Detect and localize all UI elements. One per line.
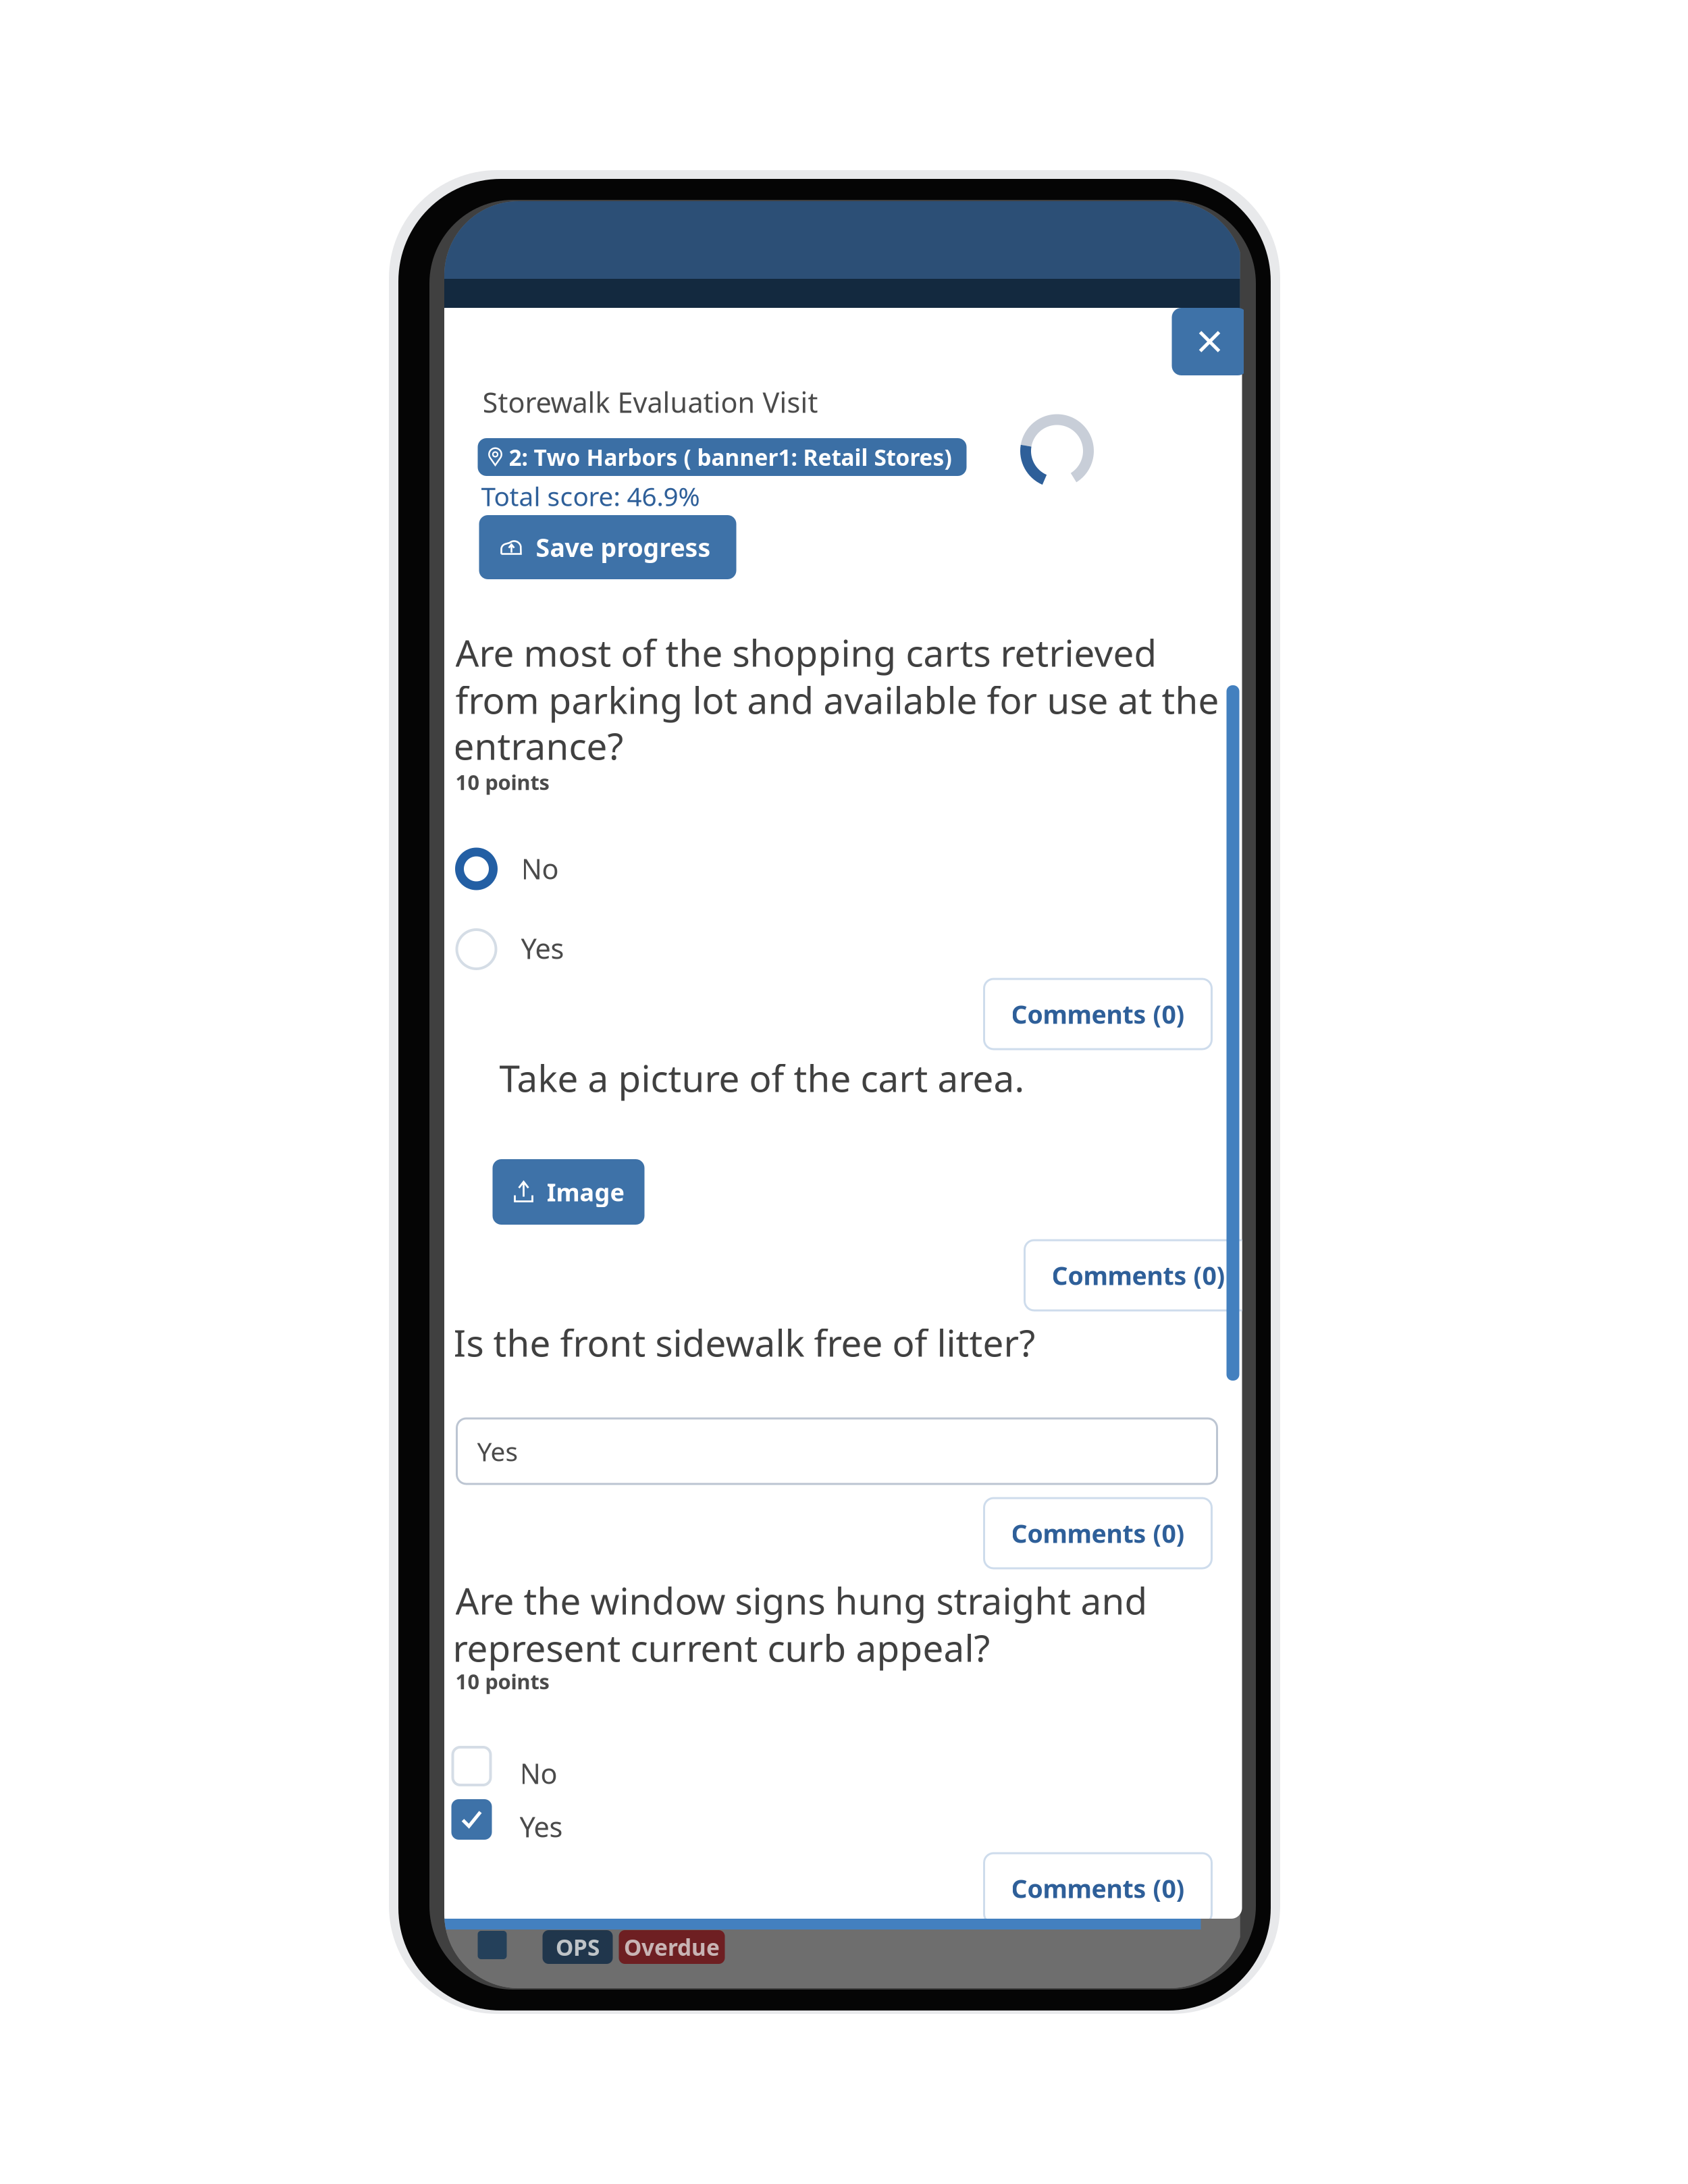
button[interactable]: Comments (0) — [984, 979, 1212, 1049]
button[interactable]: Comments (0) — [984, 1498, 1212, 1568]
staticText: 10 points — [455, 768, 549, 796]
staticText: Yes — [521, 930, 564, 967]
staticText: Save progress — [536, 530, 711, 564]
button[interactable]: Comments (0) — [984, 1853, 1212, 1923]
staticText: 10 points — [455, 1668, 549, 1695]
staticText: 2: Two Harbors ( banner1: Retail Stores) — [509, 442, 952, 472]
staticText: Comments (0) — [1052, 1259, 1225, 1292]
staticText: Is the front sidewalk free of litter? — [453, 1318, 1035, 1367]
staticText: represent current curb appeal? — [453, 1623, 990, 1672]
button[interactable]: No — [451, 1745, 653, 1790]
staticText: Comments (0) — [1011, 1516, 1185, 1550]
staticText: Are most of the shopping carts retrieved — [455, 628, 1157, 677]
staticText: Comments (0) — [1011, 997, 1185, 1031]
staticText: entrance? — [453, 721, 624, 770]
staticText: Storewalk Evaluation Visit — [482, 383, 818, 421]
staticText: Image — [547, 1176, 624, 1208]
staticText: Are the window signs hung straight and — [455, 1576, 1148, 1625]
button[interactable]: Image — [493, 1159, 644, 1225]
button[interactable]: Comments (0) — [1025, 1240, 1252, 1310]
staticText: Yes — [520, 1808, 563, 1845]
staticText: Comments (0) — [1011, 1872, 1185, 1905]
button[interactable]: Yes — [451, 1799, 653, 1843]
button[interactable]: Close — [1172, 308, 1247, 375]
staticText: OPS — [556, 1932, 600, 1962]
staticText: Yes — [477, 1434, 518, 1468]
staticText: from parking lot and available for use a… — [455, 675, 1219, 724]
button[interactable]: Save progress — [479, 515, 736, 579]
button[interactable]: No — [451, 843, 654, 886]
button[interactable]: Yes — [451, 922, 654, 965]
staticText: Overdue — [624, 1932, 720, 1962]
staticText: Take a picture of the cart area. — [499, 1053, 1025, 1102]
staticText: No — [521, 850, 559, 887]
staticText: Total score: 46.9% — [481, 479, 700, 513]
staticText: No — [520, 1755, 557, 1792]
